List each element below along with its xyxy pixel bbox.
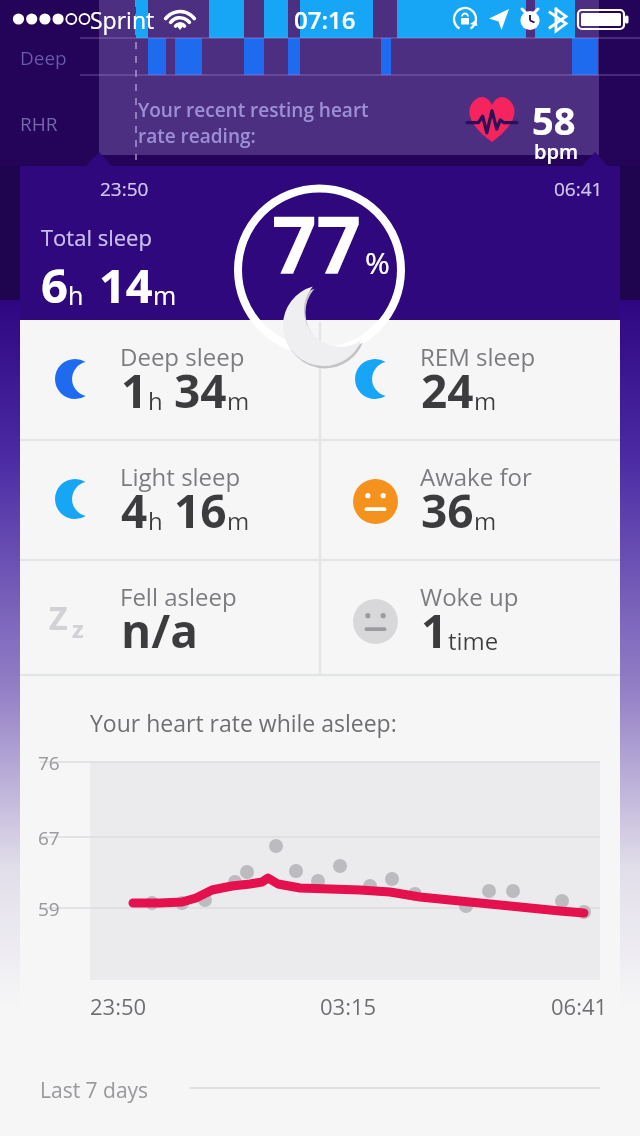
staticText: 16 [174, 479, 227, 542]
staticText: 4 [121, 479, 148, 542]
staticText: h [148, 384, 163, 417]
staticText: Z [49, 596, 68, 640]
staticText: Sprint [90, 4, 155, 35]
staticText: 59 [38, 896, 60, 922]
staticText: m [474, 384, 497, 417]
staticText: 6 [41, 253, 68, 317]
staticText: 06:41 [551, 991, 608, 1021]
staticText: 06:41 [554, 176, 603, 202]
staticText: 67 [38, 825, 60, 851]
staticText: 34 [174, 359, 227, 422]
staticText: h [148, 504, 163, 537]
staticText: time [448, 624, 499, 657]
staticText: REM sleep [420, 340, 536, 373]
staticText: rate reading: [138, 123, 256, 149]
staticText: 14 [99, 253, 153, 317]
staticText: 76 [38, 750, 60, 776]
staticText: z [72, 612, 84, 645]
button[interactable]: Z [20, 560, 320, 675]
staticText: Light sleep [120, 460, 241, 493]
button[interactable]: REM sleep [320, 320, 620, 440]
staticText: % [365, 242, 390, 283]
staticText: Woke up [420, 580, 519, 613]
staticText: n/a [121, 599, 199, 662]
staticText: 1 [121, 359, 148, 422]
staticText: 07:16 [294, 3, 356, 36]
button[interactable]: Light sleep [20, 440, 320, 560]
staticText: Deep [20, 45, 67, 71]
button[interactable]: Awake for [320, 440, 620, 560]
staticText: 58 [532, 94, 576, 146]
staticText: 77 [272, 190, 362, 296]
staticText: RHR [20, 111, 58, 137]
button[interactable]: Last 7 days [40, 1076, 149, 1105]
staticText: m [227, 384, 250, 417]
staticText: m [474, 504, 497, 537]
staticText: Last 7 days [40, 1076, 149, 1105]
staticText: Fell asleep [120, 580, 237, 613]
staticText: 36 [421, 479, 474, 542]
staticText: Your recent resting heart [138, 97, 369, 123]
staticText: Total sleep [41, 222, 152, 252]
staticText: m [227, 504, 250, 537]
staticText: 03:15 [320, 991, 377, 1021]
staticText: bpm [534, 138, 578, 165]
staticText: 1 [421, 599, 448, 662]
staticText: h [68, 278, 84, 312]
staticText: Awake for [420, 460, 532, 493]
button[interactable]: Deep sleep [20, 320, 320, 440]
staticText: 23:50 [100, 176, 149, 202]
staticText: Deep sleep [120, 340, 245, 373]
button[interactable]: Woke up [320, 560, 620, 675]
staticText: Your heart rate while asleep: [90, 707, 397, 738]
staticText: m [153, 278, 177, 312]
staticText: 24 [421, 359, 474, 422]
staticText: 23:50 [90, 991, 147, 1021]
